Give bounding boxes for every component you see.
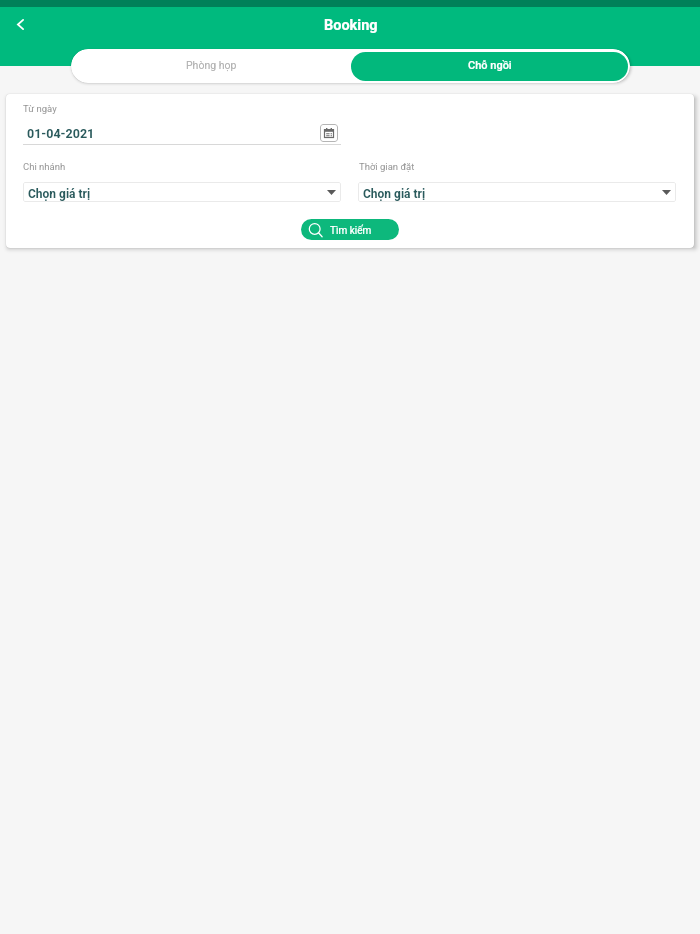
staticText: Chỗ ngồi [468, 59, 512, 72]
button[interactable]: Chọn giá trị [23, 182, 341, 202]
staticText: Chi nhánh [23, 161, 66, 172]
staticText: Chọn giá trị [363, 187, 426, 201]
staticText: Chọn giá trị [28, 187, 91, 201]
staticText: Phòng họp [186, 59, 237, 71]
staticText: Tìm kiếm [330, 225, 372, 237]
staticText: Từ ngày [23, 103, 57, 114]
button[interactable]: Chỗ ngồi [351, 52, 628, 81]
staticText: Booking [324, 17, 378, 34]
staticText: 01-04-2021 [27, 126, 95, 141]
button[interactable]: Tìm kiếm [301, 219, 399, 240]
button[interactable]: Chọn giá trị [358, 182, 676, 202]
button[interactable]: Back [3, 7, 37, 41]
staticText: Thời gian đặt [359, 161, 415, 172]
button[interactable]: Phòng họp [73, 52, 350, 81]
button[interactable]: Pick date [320, 124, 338, 142]
